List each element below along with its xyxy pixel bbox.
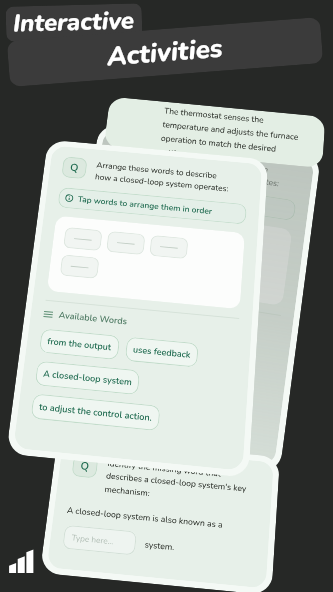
staticText: Available Words <box>100 295 170 317</box>
button[interactable] <box>104 240 145 267</box>
staticText: Arrange these words to describe how a cl… <box>145 146 282 189</box>
staticText: Arrange these words to describe how a cl… <box>94 159 230 194</box>
staticText: uses feedback <box>132 343 191 361</box>
staticText: Q <box>69 161 80 175</box>
staticText: Identify the missing word that describes… <box>104 457 249 508</box>
staticText: Tap words to arrange them in order <box>77 193 213 217</box>
button[interactable]: Tap words to arrange them in order <box>106 172 296 221</box>
staticText: Type here... <box>71 532 114 547</box>
button[interactable] <box>149 235 188 259</box>
staticText: A closed-loop system <box>43 367 132 388</box>
staticText: from the output <box>47 335 112 353</box>
button[interactable]: uses feedback <box>164 327 239 362</box>
button[interactable]: Activities <box>7 17 323 87</box>
staticText: The thermostat senses the temperature an… <box>159 106 300 166</box>
staticText: Q <box>80 459 90 474</box>
staticText: Q <box>120 146 131 161</box>
staticText: Interactive <box>13 4 135 40</box>
button[interactable]: to adjust the control action. <box>67 377 197 422</box>
staticText: to adjust the control action. <box>38 400 153 424</box>
button[interactable]: from the output <box>39 328 120 360</box>
button[interactable]: Type here... <box>62 525 137 555</box>
button[interactable] <box>60 254 100 279</box>
staticText: A closed-loop system <box>81 352 171 378</box>
button[interactable] <box>63 227 103 251</box>
staticText: A closed-loop system is also known as a <box>66 504 224 531</box>
button[interactable]: Interactive <box>6 3 142 42</box>
staticText: from the output <box>87 320 153 342</box>
button[interactable] <box>195 226 235 253</box>
staticText: Tap words to arrange them in order <box>126 179 262 211</box>
staticText: Available Words <box>58 309 128 327</box>
staticText: Activities <box>106 31 224 74</box>
button[interactable]: Tap words to arrange them in order <box>57 187 247 225</box>
button[interactable]: to adjust the control action. <box>30 393 161 431</box>
button[interactable]: A closed-loop system <box>35 361 140 395</box>
staticText: to adjust the control action. <box>75 385 189 415</box>
button[interactable]: from the output <box>79 313 161 350</box>
button[interactable]: uses feedback <box>125 336 199 368</box>
button[interactable] <box>106 231 145 255</box>
button[interactable]: A closed-loop system <box>73 345 179 386</box>
other: App logo <box>8 549 35 573</box>
staticText: uses feedback <box>172 334 231 355</box>
button[interactable] <box>152 219 192 246</box>
button[interactable] <box>109 213 150 239</box>
staticText: system. <box>144 538 175 553</box>
